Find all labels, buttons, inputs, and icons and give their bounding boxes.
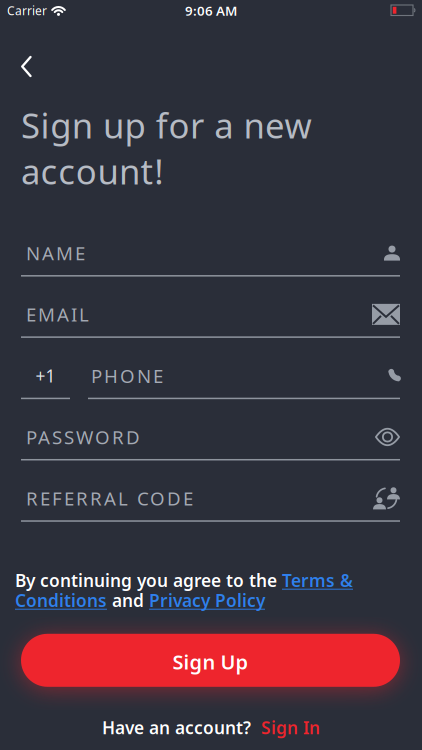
button[interactable]: Conditions bbox=[15, 589, 107, 612]
button[interactable]: Sign In bbox=[261, 716, 320, 739]
staticText: Sign up for a new account! bbox=[21, 102, 312, 194]
staticText: and bbox=[107, 589, 149, 612]
staticText: Privacy Policy bbox=[149, 589, 265, 612]
staticText: EMAIL bbox=[26, 302, 89, 327]
staticText: PASSWORD bbox=[26, 425, 140, 449]
button[interactable]: Privacy Policy bbox=[149, 589, 265, 612]
button[interactable]: Show password bbox=[375, 427, 400, 447]
staticText: Have an account? bbox=[102, 716, 251, 739]
staticText: Sign Up bbox=[172, 648, 248, 675]
staticText: Carrier bbox=[7, 2, 47, 18]
staticText: Terms & bbox=[282, 569, 353, 592]
staticText: PHONE bbox=[91, 363, 163, 388]
staticText: REFERRAL CODE bbox=[26, 486, 193, 511]
staticText: NAME bbox=[26, 241, 85, 265]
staticText: Conditions bbox=[15, 589, 107, 612]
button[interactable]: Terms & bbox=[282, 569, 353, 592]
staticText: By continuing you agree to the bbox=[15, 569, 282, 592]
staticText: +1 bbox=[35, 364, 55, 387]
staticText: 9:06 AM bbox=[185, 2, 237, 19]
staticText: Sign In bbox=[261, 716, 320, 739]
button[interactable]: Back bbox=[0, 25, 32, 76]
button[interactable]: Sign Up bbox=[21, 634, 400, 687]
